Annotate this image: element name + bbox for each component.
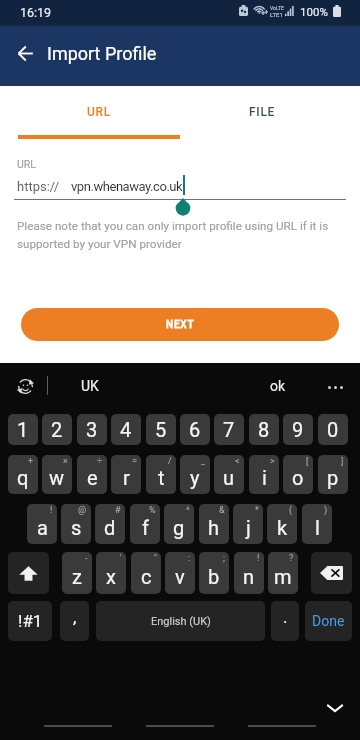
staticText: -: [85, 553, 88, 564]
button[interactable]: @: [61, 504, 91, 544]
staticText: g: [173, 516, 185, 539]
staticText: q: [17, 466, 29, 489]
button[interactable]: 5: [146, 414, 176, 445]
staticText: ): [324, 505, 328, 516]
staticText: !: [257, 553, 260, 564]
button[interactable]: ): [302, 504, 332, 544]
button[interactable]: *: [233, 504, 263, 544]
button[interactable]: _: [180, 455, 210, 494]
staticText: l: [315, 516, 320, 539]
button[interactable]: URL: [18, 94, 180, 130]
staticText: b: [208, 565, 220, 588]
staticText: 3: [86, 418, 98, 441]
button[interactable]: ^: [164, 504, 194, 544]
staticText: :: [188, 553, 191, 564]
button[interactable]: More options: [322, 374, 348, 400]
staticText: Import Profile: [47, 43, 157, 64]
button[interactable]: 4: [111, 414, 141, 445]
button[interactable]: ,: [60, 601, 89, 641]
button[interactable]: 2: [42, 414, 72, 445]
staticText: ^: [186, 505, 190, 516]
button[interactable]: NEXT: [21, 308, 339, 341]
staticText: &: [219, 505, 225, 516]
staticText: >: [270, 456, 275, 467]
staticText: supported by your VPN provider: [17, 237, 182, 251]
staticText: [: [306, 456, 309, 467]
button[interactable]: .: [271, 601, 299, 641]
button[interactable]: Done: [305, 601, 352, 641]
button[interactable]: English (UK): [96, 601, 265, 641]
button[interactable]: =: [111, 455, 141, 494]
button[interactable]: <: [214, 455, 244, 494]
button[interactable]: ;: [199, 552, 229, 594]
button[interactable]: /: [146, 455, 176, 494]
staticText: h: [208, 516, 220, 539]
button[interactable]: +: [8, 455, 38, 494]
button[interactable]: &: [199, 504, 229, 544]
button[interactable]: -: [62, 552, 92, 594]
staticText: v: [175, 565, 185, 588]
staticText: 16:19: [20, 5, 52, 20]
button[interactable]: Shift: [8, 552, 49, 594]
button[interactable]: :: [165, 552, 195, 594]
button[interactable]: Hide keyboard: [320, 693, 350, 723]
button[interactable]: ×: [42, 455, 72, 494]
staticText: #: [115, 505, 121, 516]
staticText: 100%: [300, 5, 328, 18]
button[interactable]: !#1: [8, 601, 52, 641]
staticText: t: [158, 466, 165, 489]
staticText: English (UK): [151, 615, 211, 628]
staticText: 1: [17, 418, 29, 441]
button[interactable]: Emoji and stickers: [13, 374, 37, 398]
button[interactable]: ok: [258, 371, 298, 401]
staticText: UK: [81, 378, 99, 394]
staticText: e: [87, 466, 98, 489]
staticText: s: [71, 516, 82, 539]
staticText: ok: [270, 378, 286, 394]
staticText: ?: [289, 553, 294, 564]
button[interactable]: ]: [318, 455, 348, 494]
button[interactable]: Backspace: [311, 552, 352, 594]
staticText: w: [49, 466, 65, 489]
staticText: 2: [51, 418, 63, 441]
button[interactable]: 9: [283, 414, 313, 445]
button[interactable]: 6: [180, 414, 210, 445]
button[interactable]: UK: [70, 371, 110, 401]
staticText: %: [149, 505, 156, 516]
staticText: n: [243, 565, 255, 588]
staticText: ÷: [97, 456, 103, 467]
button[interactable]: ?: [268, 552, 298, 594]
button[interactable]: 7: [214, 414, 244, 445]
staticText: =: [132, 456, 137, 467]
staticText: u: [223, 466, 235, 489]
button[interactable]: 1: [8, 414, 38, 445]
button[interactable]: 8: [249, 414, 279, 445]
staticText: ×: [63, 456, 68, 467]
button[interactable]: #: [95, 504, 125, 544]
staticText: a: [37, 516, 48, 539]
button[interactable]: 3: [77, 414, 107, 445]
button[interactable]: %: [130, 504, 160, 544]
staticText: /: [168, 456, 172, 467]
button[interactable]: (: [267, 504, 297, 544]
button[interactable]: ': [96, 552, 126, 594]
button[interactable]: Back: [4, 32, 46, 74]
button[interactable]: >: [249, 455, 279, 494]
button[interactable]: ÷: [77, 455, 107, 494]
staticText: Done: [312, 613, 345, 629]
staticText: ;: [223, 553, 225, 564]
button[interactable]: ": [131, 552, 161, 594]
button[interactable]: !: [27, 504, 57, 544]
staticText: z: [72, 565, 82, 588]
staticText: vpn.whenaway.co.uk: [71, 179, 183, 194]
staticText: k: [277, 516, 288, 539]
staticText: i: [262, 466, 267, 489]
button[interactable]: 0: [318, 414, 348, 445]
staticText: ": [154, 553, 157, 564]
button[interactable]: !: [234, 552, 264, 594]
staticText: !#1: [18, 611, 43, 631]
button[interactable]: FILE: [181, 94, 343, 130]
button[interactable]: [: [283, 455, 313, 494]
staticText: o: [292, 466, 304, 489]
staticText: !: [50, 505, 53, 516]
